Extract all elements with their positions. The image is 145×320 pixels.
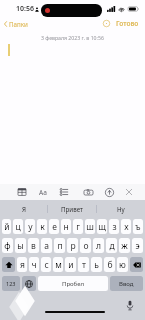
staticText: к (40, 221, 45, 233)
button[interactable]: б (104, 257, 115, 272)
staticText: и (68, 259, 74, 271)
button[interactable]: д (106, 238, 117, 253)
button[interactable]: й (2, 219, 11, 234)
button[interactable]: э (132, 238, 143, 253)
staticText: ц (15, 221, 21, 233)
button[interactable]: Shift (2, 257, 15, 272)
staticText: э (135, 240, 140, 252)
button[interactable]: т (78, 257, 89, 272)
button[interactable]: More options (101, 18, 112, 29)
button[interactable]: Готово (115, 17, 140, 30)
button[interactable]: з (109, 219, 119, 234)
staticText: с (44, 259, 49, 271)
staticText: д (109, 240, 115, 252)
staticText: е (52, 221, 57, 233)
button[interactable]: ч (29, 257, 39, 272)
button[interactable]: Camera (82, 186, 94, 198)
button[interactable]: Пробел (38, 276, 108, 291)
staticText: ч (31, 259, 37, 271)
staticText: п (57, 240, 63, 252)
button[interactable]: ж (119, 238, 130, 253)
button[interactable]: н (61, 219, 71, 234)
button[interactable]: Ну (97, 200, 145, 218)
button[interactable]: Close keyboard (123, 186, 135, 198)
staticText: б (107, 259, 113, 271)
button[interactable]: 123 (2, 276, 20, 291)
staticText: ъ (135, 221, 141, 233)
button[interactable]: г (73, 219, 83, 234)
button[interactable]: в (28, 238, 39, 253)
button[interactable]: Aa (37, 186, 49, 198)
button[interactable]: ц (13, 219, 23, 234)
button[interactable]: х (121, 219, 131, 234)
staticText: ы (17, 240, 24, 252)
button[interactable]: Table (16, 186, 28, 198)
staticText: 3 февраля 2023 г. в 10:56 (41, 34, 104, 41)
button[interactable]: Папки (3, 19, 29, 29)
button[interactable]: и (65, 257, 76, 272)
button[interactable]: к (37, 219, 47, 234)
button[interactable]: Backspace (130, 257, 143, 272)
button[interactable]: щ (97, 219, 107, 234)
button[interactable]: ф (2, 238, 13, 253)
button[interactable]: е (49, 219, 59, 234)
button[interactable]: у (25, 219, 35, 234)
staticText: з (112, 221, 117, 233)
staticText: ь (94, 259, 99, 271)
button[interactable]: ы (15, 238, 26, 253)
button[interactable]: о (80, 238, 91, 253)
button[interactable]: Привет (48, 200, 96, 218)
staticText: 123 (6, 280, 16, 287)
staticText: а (44, 240, 49, 252)
staticText: ж (121, 240, 128, 252)
staticText: у (28, 221, 33, 233)
button[interactable]: Switch language (22, 276, 36, 291)
staticText: Ввод (119, 280, 134, 288)
button[interactable]: Ввод (110, 276, 143, 291)
staticText: я (20, 259, 25, 271)
staticText: о (83, 240, 89, 252)
button[interactable]: л (93, 238, 104, 253)
staticText: ш (86, 221, 94, 233)
button[interactable]: р (67, 238, 78, 253)
staticText: м (55, 259, 62, 271)
staticText: Aa (39, 188, 47, 197)
staticText: Я (22, 205, 26, 213)
button[interactable]: м (53, 257, 63, 272)
button[interactable]: ю (117, 257, 128, 272)
button[interactable]: а (41, 238, 52, 253)
staticText: г (76, 221, 80, 233)
staticText: Пробел (62, 280, 85, 288)
button[interactable]: Я (0, 200, 47, 218)
staticText: ф (4, 240, 11, 252)
button[interactable]: Markup (103, 186, 115, 198)
staticText: Готово (116, 19, 139, 28)
staticText: х (124, 221, 129, 233)
button[interactable]: ь (91, 257, 102, 272)
button[interactable]: ъ (133, 219, 143, 234)
staticText: т (82, 259, 86, 271)
staticText: в (31, 240, 36, 252)
staticText: р (70, 240, 76, 252)
staticText: щ (98, 221, 106, 233)
button[interactable]: Dictation (125, 300, 135, 311)
staticText: н (63, 221, 69, 233)
button[interactable]: ш (85, 219, 95, 234)
button[interactable]: Checklist (58, 186, 70, 198)
staticText: 10:56 (16, 4, 34, 14)
staticText: Ну (117, 205, 125, 213)
staticText: ю (119, 259, 126, 271)
button[interactable]: я (17, 257, 27, 272)
staticText: Папки (9, 20, 28, 28)
staticText: Привет (61, 205, 83, 213)
staticText: л (96, 240, 101, 252)
staticText: й (4, 221, 10, 233)
button[interactable]: с (41, 257, 51, 272)
button[interactable]: п (54, 238, 65, 253)
